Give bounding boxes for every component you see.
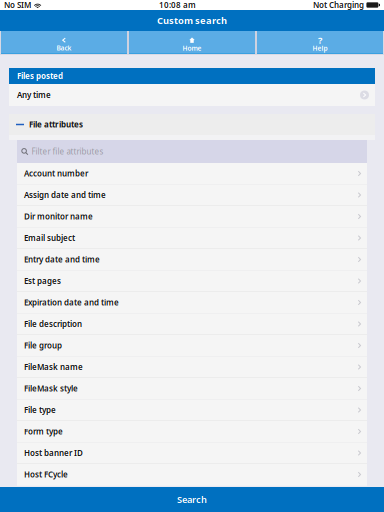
button[interactable]: Any time [9,84,375,106]
button[interactable]: Account number [17,163,367,184]
staticText: Host banner ID [24,448,83,458]
button[interactable]: Home [129,31,255,54]
staticText: Filter file attributes [31,146,103,157]
button[interactable]: File group [17,335,367,356]
staticText: Est pages [24,276,61,286]
staticText: Account number [24,168,88,179]
button[interactable]: File description [17,313,367,335]
staticText: FileMask name [24,362,83,372]
staticText: Expiration date and time [24,297,119,308]
staticText: Email subject [24,233,75,243]
staticText: Home [182,44,201,53]
button[interactable]: Back [1,31,127,54]
button[interactable]: Email subject [17,227,367,249]
staticText: Back [56,44,71,52]
button[interactable]: Dir monitor name [17,206,367,227]
staticText: Not Charging [313,0,364,10]
staticText: File description [24,319,82,329]
staticText: Form type [24,426,63,437]
staticText: Host FCycle [24,469,68,480]
staticText: File group [24,340,62,351]
button[interactable]: Host banner ID [17,442,367,464]
staticText: Custom search [157,14,227,27]
staticText: Files posted [17,71,63,81]
button[interactable]: Assign date and time [17,184,367,206]
staticText: File attributes [29,119,83,130]
staticText: Dir monitor name [24,211,93,222]
button[interactable]: Host FCycle [17,464,367,485]
button[interactable]: Entry date and time [17,249,367,270]
button[interactable]: File type [17,399,367,421]
staticText: ? [318,34,322,46]
button[interactable]: Form type [17,421,367,442]
staticText: Search [177,493,207,506]
staticText: Any time [17,90,51,100]
staticText: Entry date and time [24,254,100,265]
staticText: Help [312,44,327,53]
staticText: File type [24,405,56,415]
staticText: FileMask style [24,383,78,394]
button[interactable]: ? [257,31,383,54]
button[interactable]: Expiration date and time [17,292,367,313]
button[interactable]: FileMask name [17,356,367,378]
staticText: 10:08 am [159,0,196,10]
staticText: No SIM [4,0,31,10]
button[interactable]: Est pages [17,270,367,292]
button[interactable]: Search [0,487,384,512]
button[interactable]: FileMask style [17,378,367,399]
staticText: Assign date and time [24,190,106,200]
